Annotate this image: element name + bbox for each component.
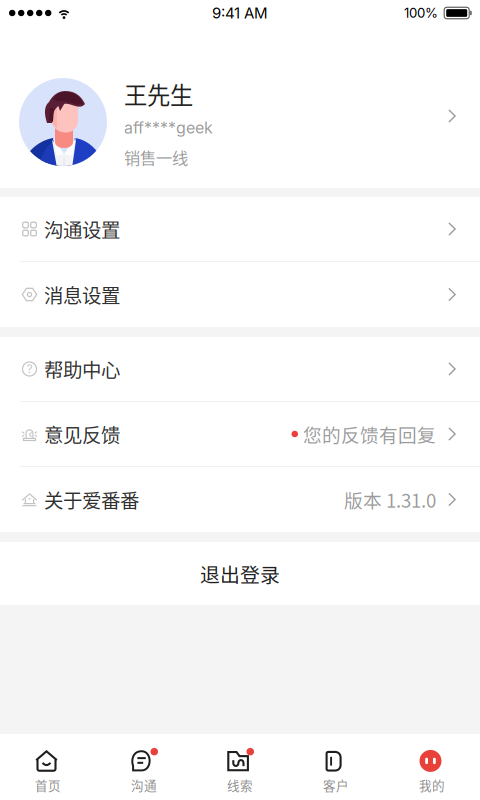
staticText: 我的: [419, 776, 445, 794]
staticText: 销售一线: [124, 145, 188, 169]
staticText: 沟通: [131, 776, 157, 794]
staticText: 9:41 AM: [212, 4, 268, 22]
button[interactable]: 关于爱番番: [0, 467, 480, 532]
staticText: 沟通设置: [44, 215, 120, 243]
staticText: 首页: [35, 776, 61, 794]
staticText: 客户: [323, 776, 349, 794]
staticText: 退出登录: [200, 559, 280, 588]
staticText: 您的反馈有回复: [303, 420, 436, 447]
button[interactable]: 消息设置: [0, 262, 480, 327]
staticText: 版本 1.31.0: [344, 486, 436, 513]
button[interactable]: 沟通: [96, 730, 192, 800]
button[interactable]: 我的: [384, 730, 480, 800]
button[interactable]: 王先生: [0, 32, 480, 188]
button[interactable]: 首页: [0, 730, 96, 800]
button[interactable]: 意见反馈: [0, 402, 480, 466]
staticText: aff****geek: [124, 118, 213, 137]
staticText: 帮助中心: [44, 355, 120, 383]
staticText: 100%: [404, 5, 438, 21]
button[interactable]: 客户: [288, 730, 384, 800]
button[interactable]: 线索: [192, 730, 288, 800]
button[interactable]: 退出登录: [0, 542, 480, 605]
staticText: ?: [26, 362, 32, 376]
staticText: 消息设置: [44, 280, 120, 309]
button[interactable]: 沟通设置: [0, 197, 480, 261]
staticText: 王先生: [124, 77, 193, 111]
staticText: 意见反馈: [44, 420, 120, 448]
button[interactable]: ?: [0, 337, 480, 401]
staticText: 关于爱番番: [44, 485, 139, 514]
staticText: 线索: [227, 776, 253, 794]
